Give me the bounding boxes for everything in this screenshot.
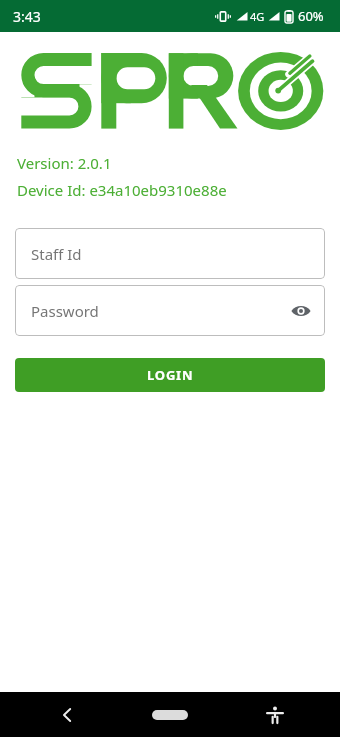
staticText: 3:43 [13,7,41,26]
staticText: Version: 2.0.1 [17,153,112,173]
staticText: LOGIN [147,366,194,384]
staticText: Staff Id [31,244,82,264]
staticText: 4G [250,9,265,24]
button[interactable]: Home [140,702,200,728]
button[interactable]: Staff Id [15,228,325,279]
button[interactable]: LOGIN [15,358,325,392]
staticText: Password [31,301,99,321]
button[interactable]: Password [15,285,325,336]
button[interactable]: Back [52,700,82,730]
button[interactable]: Accessibility [260,700,290,730]
staticText: 60% [298,7,324,25]
staticText: Device Id: e34a10eb9310e88e [17,180,227,200]
button[interactable]: Show password [288,298,314,324]
